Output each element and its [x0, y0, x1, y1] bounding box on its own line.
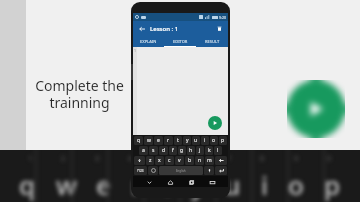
staticText: h: [189, 147, 193, 154]
button[interactable]: a: [139, 146, 148, 155]
staticText: u: [224, 167, 241, 202]
button[interactable]: Hide keyboard: [144, 177, 154, 187]
staticText: f: [172, 147, 174, 154]
staticText: 7: [227, 154, 232, 164]
button[interactable]: r: [164, 136, 173, 145]
staticText: w: [56, 167, 77, 202]
button[interactable]: Recents: [186, 177, 196, 187]
staticText: u: [194, 137, 198, 144]
button[interactable]: j: [196, 146, 204, 155]
button[interactable]: z: [146, 156, 154, 165]
button[interactable]: q: [134, 136, 143, 145]
button[interactable]: x: [155, 156, 164, 165]
button[interactable]: Home: [165, 177, 175, 187]
staticText: 5: [161, 154, 166, 164]
staticText: s: [152, 147, 155, 154]
button[interactable]: EDITOR: [164, 36, 196, 46]
button[interactable]: English: [159, 166, 203, 175]
staticText: 6: [194, 154, 199, 164]
staticText: 8: [260, 154, 265, 164]
button[interactable]: Play: [287, 80, 345, 138]
button[interactable]: c: [165, 156, 174, 165]
button[interactable]: y: [183, 136, 191, 145]
button[interactable]: f: [169, 146, 177, 155]
staticText: RESULT: [205, 39, 220, 44]
staticText: 9: [294, 154, 299, 164]
button[interactable]: Run: [208, 116, 222, 130]
staticText: g: [180, 147, 184, 154]
staticText: ?123: [137, 169, 144, 173]
staticText: t: [177, 137, 179, 144]
staticText: o: [212, 137, 216, 144]
staticText: EXPLAIN: [140, 39, 157, 44]
staticText: 9:20: [219, 15, 226, 20]
staticText: z: [149, 157, 152, 164]
button[interactable]: e: [154, 136, 163, 145]
button[interactable]: l: [214, 146, 222, 155]
staticText: r: [131, 167, 142, 202]
button[interactable]: m: [205, 156, 214, 165]
staticText: y: [186, 137, 189, 144]
staticText: p: [221, 137, 225, 144]
button[interactable]: Emoji: [148, 166, 158, 175]
staticText: English: [176, 169, 186, 173]
staticText: i: [204, 137, 206, 144]
staticText: EDITOR: [173, 39, 188, 44]
staticText: c: [168, 157, 171, 164]
staticText: x: [158, 157, 161, 164]
staticText: 0: [327, 154, 332, 164]
button[interactable]: g: [178, 146, 186, 155]
staticText: Lesson : 1: [150, 25, 179, 33]
staticText: y: [191, 167, 205, 202]
staticText: e: [96, 167, 111, 202]
button[interactable]: b: [185, 156, 194, 165]
button[interactable]: k: [205, 146, 213, 155]
button[interactable]: t: [174, 136, 182, 145]
button[interactable]: ?123: [134, 166, 147, 175]
staticText: q: [137, 137, 141, 144]
button[interactable]: i: [201, 136, 209, 145]
button[interactable]: v: [175, 156, 184, 165]
button[interactable]: Voice input: [204, 166, 214, 175]
staticText: d: [162, 147, 166, 154]
staticText: n: [198, 157, 202, 164]
button[interactable]: h: [187, 146, 195, 155]
button[interactable]: EXPLAIN: [133, 36, 164, 46]
button[interactable]: d: [159, 146, 168, 155]
staticText: b: [188, 157, 192, 164]
staticText: 1: [134, 48, 137, 53]
staticText: j: [199, 147, 201, 154]
staticText: t: [161, 167, 171, 202]
button[interactable]: Enter: [215, 166, 227, 175]
button[interactable]: Delete: [215, 24, 224, 33]
staticText: q: [19, 167, 36, 202]
staticText: a: [142, 147, 145, 154]
staticText: r: [167, 137, 170, 144]
button[interactable]: w: [144, 136, 153, 145]
staticText: p: [324, 167, 341, 202]
button[interactable]: p: [219, 136, 227, 145]
staticText: o: [288, 167, 304, 202]
button[interactable]: n: [195, 156, 204, 165]
staticText: 4: [128, 154, 133, 164]
button[interactable]: o: [210, 136, 218, 145]
staticText: e: [157, 137, 160, 144]
staticText: m: [207, 157, 212, 164]
staticText: v: [178, 157, 181, 164]
button[interactable]: Backspace: [215, 156, 227, 165]
button[interactable]: s: [149, 146, 158, 155]
staticText: l: [217, 147, 219, 154]
button[interactable]: Shift: [134, 156, 145, 165]
staticText: k: [208, 147, 211, 154]
button[interactable]: u: [192, 136, 200, 145]
staticText: w: [147, 137, 151, 144]
button[interactable]: Keyboard: [207, 177, 217, 187]
button[interactable]: RESULT: [196, 36, 228, 46]
button[interactable]: Back: [137, 24, 146, 33]
staticText: Complete the trainning: [35, 76, 124, 112]
staticText: i: [261, 167, 269, 202]
